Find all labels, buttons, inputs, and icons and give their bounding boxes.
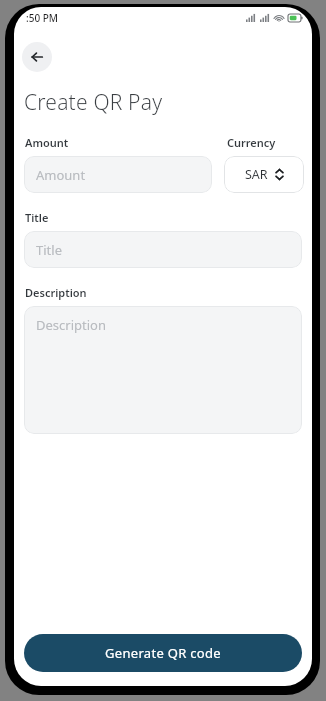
button[interactable]: Description xyxy=(24,306,302,434)
button[interactable]: Back xyxy=(22,42,52,72)
button[interactable]: Amount xyxy=(24,156,212,193)
button[interactable]: Title xyxy=(24,231,302,268)
staticText: Description xyxy=(25,285,87,300)
staticText: Amount xyxy=(36,166,86,184)
staticText: Create QR Pay xyxy=(24,88,163,117)
staticText: Currency xyxy=(227,135,276,150)
staticText: SAR xyxy=(245,166,268,183)
button[interactable]: SAR xyxy=(224,156,304,193)
button[interactable]: Generate QR code xyxy=(24,634,302,672)
staticText: Description xyxy=(36,316,106,334)
staticText: :50 PM xyxy=(26,11,59,25)
staticText: Title xyxy=(36,241,62,259)
staticText: Amount xyxy=(25,135,69,150)
staticText: Generate QR code xyxy=(105,644,221,662)
staticText: Title xyxy=(25,210,49,225)
